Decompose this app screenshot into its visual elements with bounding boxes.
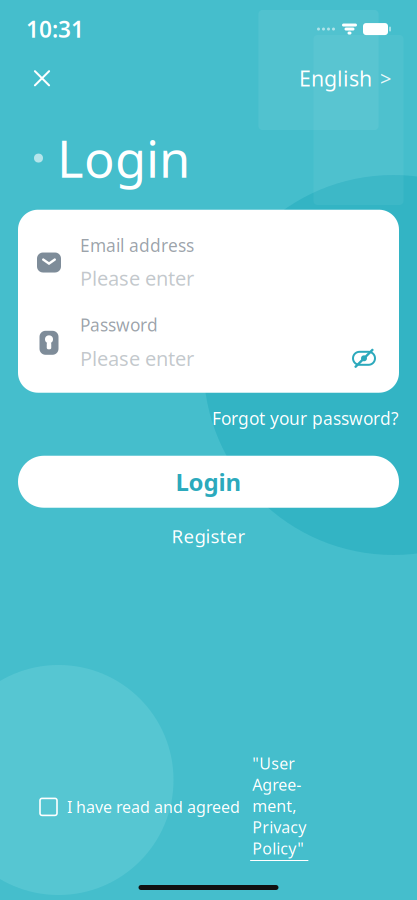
staticText: Email address	[80, 234, 194, 257]
staticText: 10:31	[26, 14, 84, 44]
staticText: Login	[175, 466, 241, 498]
button[interactable]: English	[295, 56, 395, 100]
button[interactable]: Show password	[347, 344, 381, 372]
button[interactable]: Forgot your password?	[212, 401, 399, 436]
staticText: Forgot your password?	[212, 407, 399, 430]
button[interactable]: Login	[18, 456, 399, 508]
button[interactable]: Close	[22, 58, 62, 98]
staticText: >	[380, 65, 391, 92]
staticText: Please enter	[80, 345, 194, 372]
staticText: Register	[171, 524, 245, 548]
staticText: I have read and agreed	[67, 796, 240, 817]
staticText: "User Agreement, Privacy Policy"	[252, 753, 306, 859]
staticText: Login	[57, 124, 190, 192]
staticText: Please enter	[80, 265, 194, 291]
button[interactable]: "User Agreement, Privacy Policy"	[250, 753, 308, 861]
button[interactable]: Agree to terms	[40, 798, 57, 815]
staticText: Password	[80, 313, 158, 336]
staticText: English	[299, 64, 372, 92]
button[interactable]: Register	[171, 516, 245, 556]
